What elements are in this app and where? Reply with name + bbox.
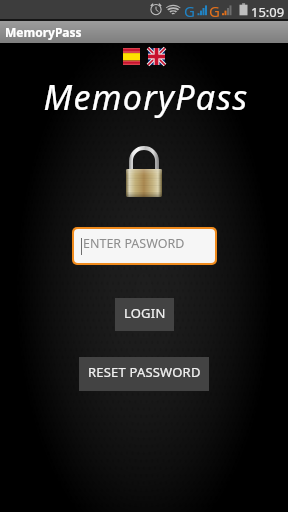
button[interactable]: English language [148, 48, 165, 65]
staticText: 15:09 [251, 3, 285, 21]
button[interactable]: MemoryPass [5, 24, 82, 40]
button[interactable]: Spanish language [123, 48, 140, 65]
button[interactable]: RESET PASSWORD [79, 357, 209, 391]
staticText: G [184, 1, 195, 21]
staticText: G [209, 1, 220, 21]
staticText: MemoryPass [2, 74, 288, 120]
staticText: ENTER PASWORD [83, 235, 185, 252]
staticText: LOGIN [124, 304, 166, 322]
staticText: RESET PASSWORD [88, 363, 201, 381]
button[interactable]: ENTER PASWORD [74, 229, 215, 263]
button[interactable]: LOGIN [115, 298, 174, 331]
